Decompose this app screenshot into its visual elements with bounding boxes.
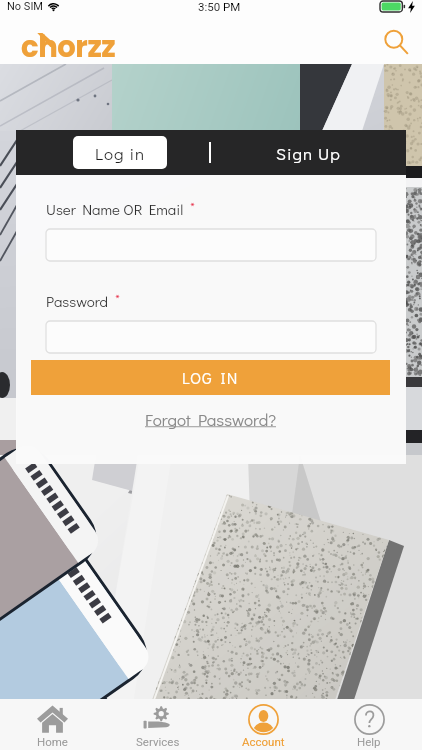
button[interactable]: Log in [73, 136, 167, 169]
button[interactable]: Sign Up [221, 130, 396, 175]
staticText: * [115, 290, 120, 308]
staticText: Password [46, 291, 109, 311]
staticText: 3:50 PM [198, 0, 241, 13]
button[interactable]: Home [0, 699, 105, 750]
staticText: No SIM [7, 0, 43, 13]
staticText: * [190, 198, 195, 216]
staticText: LOG IN [182, 367, 239, 388]
button[interactable]: Search [376, 22, 416, 62]
staticText: Forgot Password? [145, 408, 277, 430]
button[interactable]: LOG IN [31, 360, 390, 395]
staticText: chorzz [21, 27, 116, 68]
staticText: Sign Up [276, 142, 341, 164]
staticText: User Name OR Email [46, 199, 184, 219]
staticText: Log in [95, 142, 146, 164]
staticText: Account [242, 735, 285, 748]
button[interactable]: Help [316, 699, 422, 750]
staticText: Services [136, 735, 180, 748]
staticText: Help [357, 735, 381, 748]
button[interactable]: Services [105, 699, 210, 750]
button[interactable]: Account [210, 699, 316, 750]
staticText: Home [37, 735, 68, 748]
button[interactable]: Forgot Password? [145, 408, 277, 430]
